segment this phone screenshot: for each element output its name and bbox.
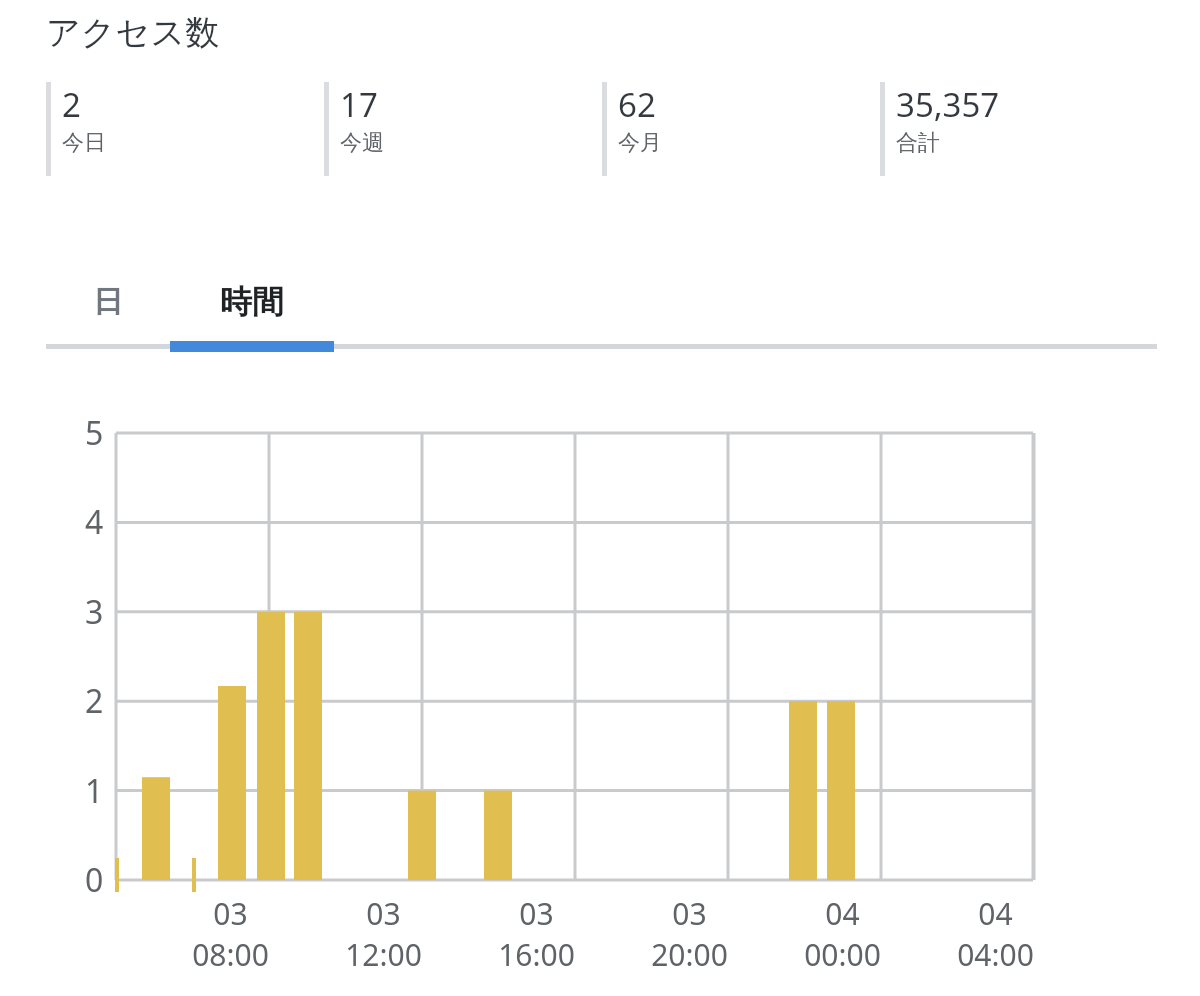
staticText: 今月 (618, 129, 662, 157)
staticText: 4 (85, 500, 104, 544)
button[interactable]: 日 (46, 255, 170, 348)
staticText: 日 (93, 283, 123, 321)
staticText: 03 (366, 893, 401, 934)
staticText: 2 (62, 82, 81, 127)
staticText: 1 (85, 769, 104, 813)
button[interactable]: 17 (324, 82, 564, 176)
button[interactable]: 2 (46, 82, 286, 176)
staticText: 時間 (220, 282, 284, 322)
staticText: 35,357 (896, 82, 1000, 127)
staticText: 00:00 (804, 934, 881, 975)
staticText: 3 (85, 590, 104, 634)
staticText: 04 (825, 893, 860, 934)
staticText: 0 (85, 858, 104, 902)
staticText: 20:00 (651, 934, 728, 975)
staticText: 16:00 (498, 934, 575, 975)
button[interactable]: 62 (602, 82, 842, 176)
button[interactable]: 時間 (170, 255, 334, 348)
staticText: 12:00 (345, 934, 422, 975)
staticText: 04 (978, 893, 1013, 934)
staticText: 2 (85, 679, 104, 723)
staticText: 今日 (62, 129, 106, 157)
staticText: 合計 (896, 129, 940, 157)
staticText: 03 (213, 893, 248, 934)
staticText: 03 (672, 893, 707, 934)
staticText: 04:00 (957, 934, 1034, 975)
button[interactable]: 35,357 (880, 82, 1120, 176)
staticText: 62 (618, 82, 656, 127)
staticText: アクセス数 (46, 11, 220, 54)
staticText: 17 (340, 82, 378, 127)
staticText: 08:00 (192, 934, 269, 975)
staticText: 03 (519, 893, 554, 934)
staticText: 今週 (340, 129, 384, 157)
staticText: 5 (85, 411, 104, 455)
